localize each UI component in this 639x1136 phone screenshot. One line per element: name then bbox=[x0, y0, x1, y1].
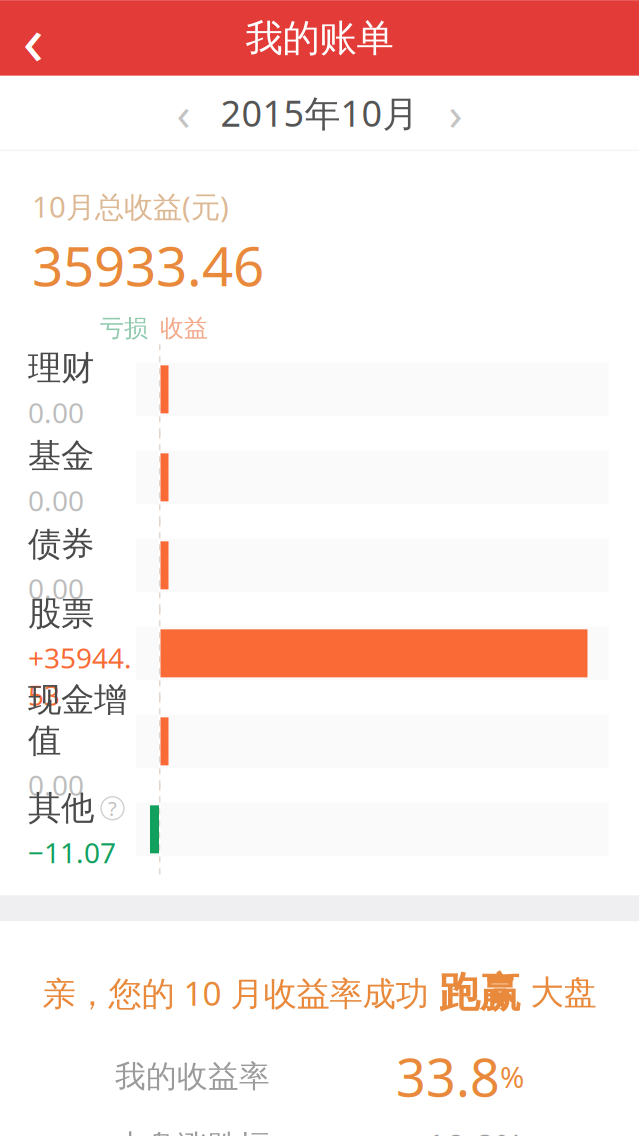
staticText: 亲，您的 10 月收益率成功 bbox=[42, 971, 438, 1015]
staticText: 股票 bbox=[28, 593, 94, 634]
staticText: 其他 bbox=[28, 788, 94, 829]
staticText: 0.00 bbox=[28, 394, 84, 431]
staticText: 亏损 bbox=[100, 314, 148, 343]
staticText: 10月总收益(元) bbox=[32, 187, 229, 226]
staticText: 2015年10月 bbox=[220, 89, 418, 137]
staticText: 35933.46 bbox=[32, 229, 264, 301]
staticText: › bbox=[448, 83, 462, 143]
staticText: 0.00 bbox=[28, 766, 84, 803]
staticText: +35944.53 bbox=[28, 639, 132, 713]
staticText: 0.00 bbox=[28, 570, 84, 607]
staticText: −11.07 bbox=[28, 834, 116, 871]
staticText: 64% bbox=[533, 0, 586, 1]
staticText: 17:04 bbox=[315, 0, 387, 2]
button[interactable]: 返回 bbox=[0, 1, 66, 76]
staticText: % bbox=[500, 1057, 524, 1096]
staticText: 大盘涨跌幅 bbox=[115, 1127, 270, 1136]
staticText: 基金 bbox=[28, 436, 94, 477]
staticText: 0.00 bbox=[28, 482, 84, 519]
staticText: 理财 bbox=[28, 348, 94, 389]
button[interactable]: 下个月 bbox=[428, 83, 482, 143]
staticText: 现金增值 bbox=[28, 679, 127, 761]
staticText: 收益 bbox=[160, 314, 208, 343]
staticText: 我的账单 bbox=[245, 15, 393, 61]
staticText: 债券 bbox=[28, 524, 94, 565]
staticText: +10.8% bbox=[406, 1123, 524, 1136]
staticText: ‹ bbox=[22, 0, 43, 84]
staticText: ? bbox=[108, 795, 117, 822]
staticText: 大盘 bbox=[520, 972, 596, 1013]
button[interactable]: 其他说明 bbox=[101, 797, 124, 820]
staticText: ‹ bbox=[176, 83, 190, 143]
staticText: 跑赢 bbox=[438, 967, 520, 1018]
staticText: 我的收益率 bbox=[115, 1058, 270, 1095]
staticText: 33.8 bbox=[396, 1042, 500, 1111]
button[interactable]: 上个月 bbox=[156, 83, 210, 143]
